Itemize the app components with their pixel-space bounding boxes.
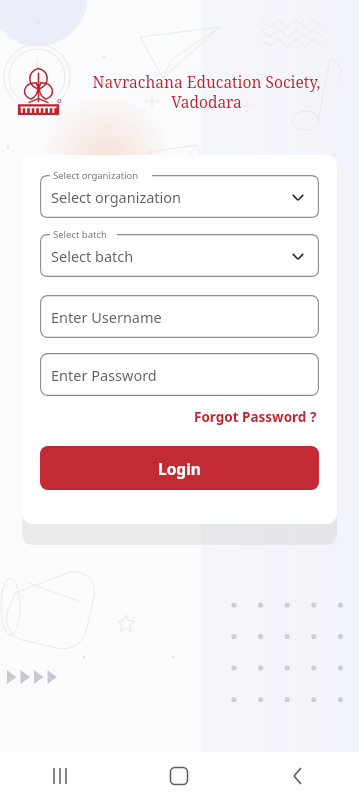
button[interactable]: Select batch — [40, 234, 319, 277]
staticText: Forgot Password ? — [194, 408, 317, 426]
staticText: Login — [158, 458, 201, 479]
staticText: Select batch — [53, 228, 107, 241]
button[interactable]: Enter Password — [40, 353, 319, 396]
staticText: Select organization — [51, 187, 182, 207]
staticText: Enter Username — [51, 307, 162, 327]
staticText: Navrachana Education Society, Vadodara — [67, 71, 346, 112]
button[interactable]: Select organization — [40, 175, 319, 218]
staticText: Select organization — [53, 169, 139, 182]
staticText: Select batch — [51, 246, 134, 266]
button[interactable]: Login — [40, 446, 319, 490]
button[interactable]: Forgot Password ? — [192, 406, 319, 428]
button[interactable]: Back — [239, 752, 359, 800]
button[interactable]: Recent apps — [0, 752, 119, 800]
button[interactable]: Enter Username — [40, 295, 319, 338]
button[interactable]: Home — [119, 752, 239, 800]
staticText: Enter Password — [51, 365, 157, 385]
